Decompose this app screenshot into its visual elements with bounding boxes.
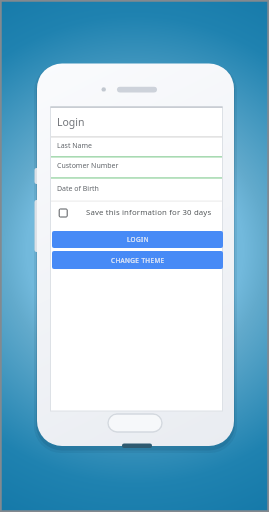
staticText: Login [57,115,85,129]
staticText: LOGIN [127,235,149,244]
staticText: Last Name [57,141,93,151]
staticText: Date of Birth [57,184,99,194]
button[interactable]: CHANGE THEME [52,251,223,269]
staticText: Customer Number [57,161,119,171]
button[interactable]: LOGIN [52,231,223,248]
button[interactable] [51,182,222,201]
staticText: CHANGE THEME [111,256,165,265]
button[interactable]: Save this information for 30 days [56,204,216,221]
staticText: Save this information for 30 days [86,207,212,218]
button[interactable] [51,139,222,157]
button[interactable] [51,159,222,178]
